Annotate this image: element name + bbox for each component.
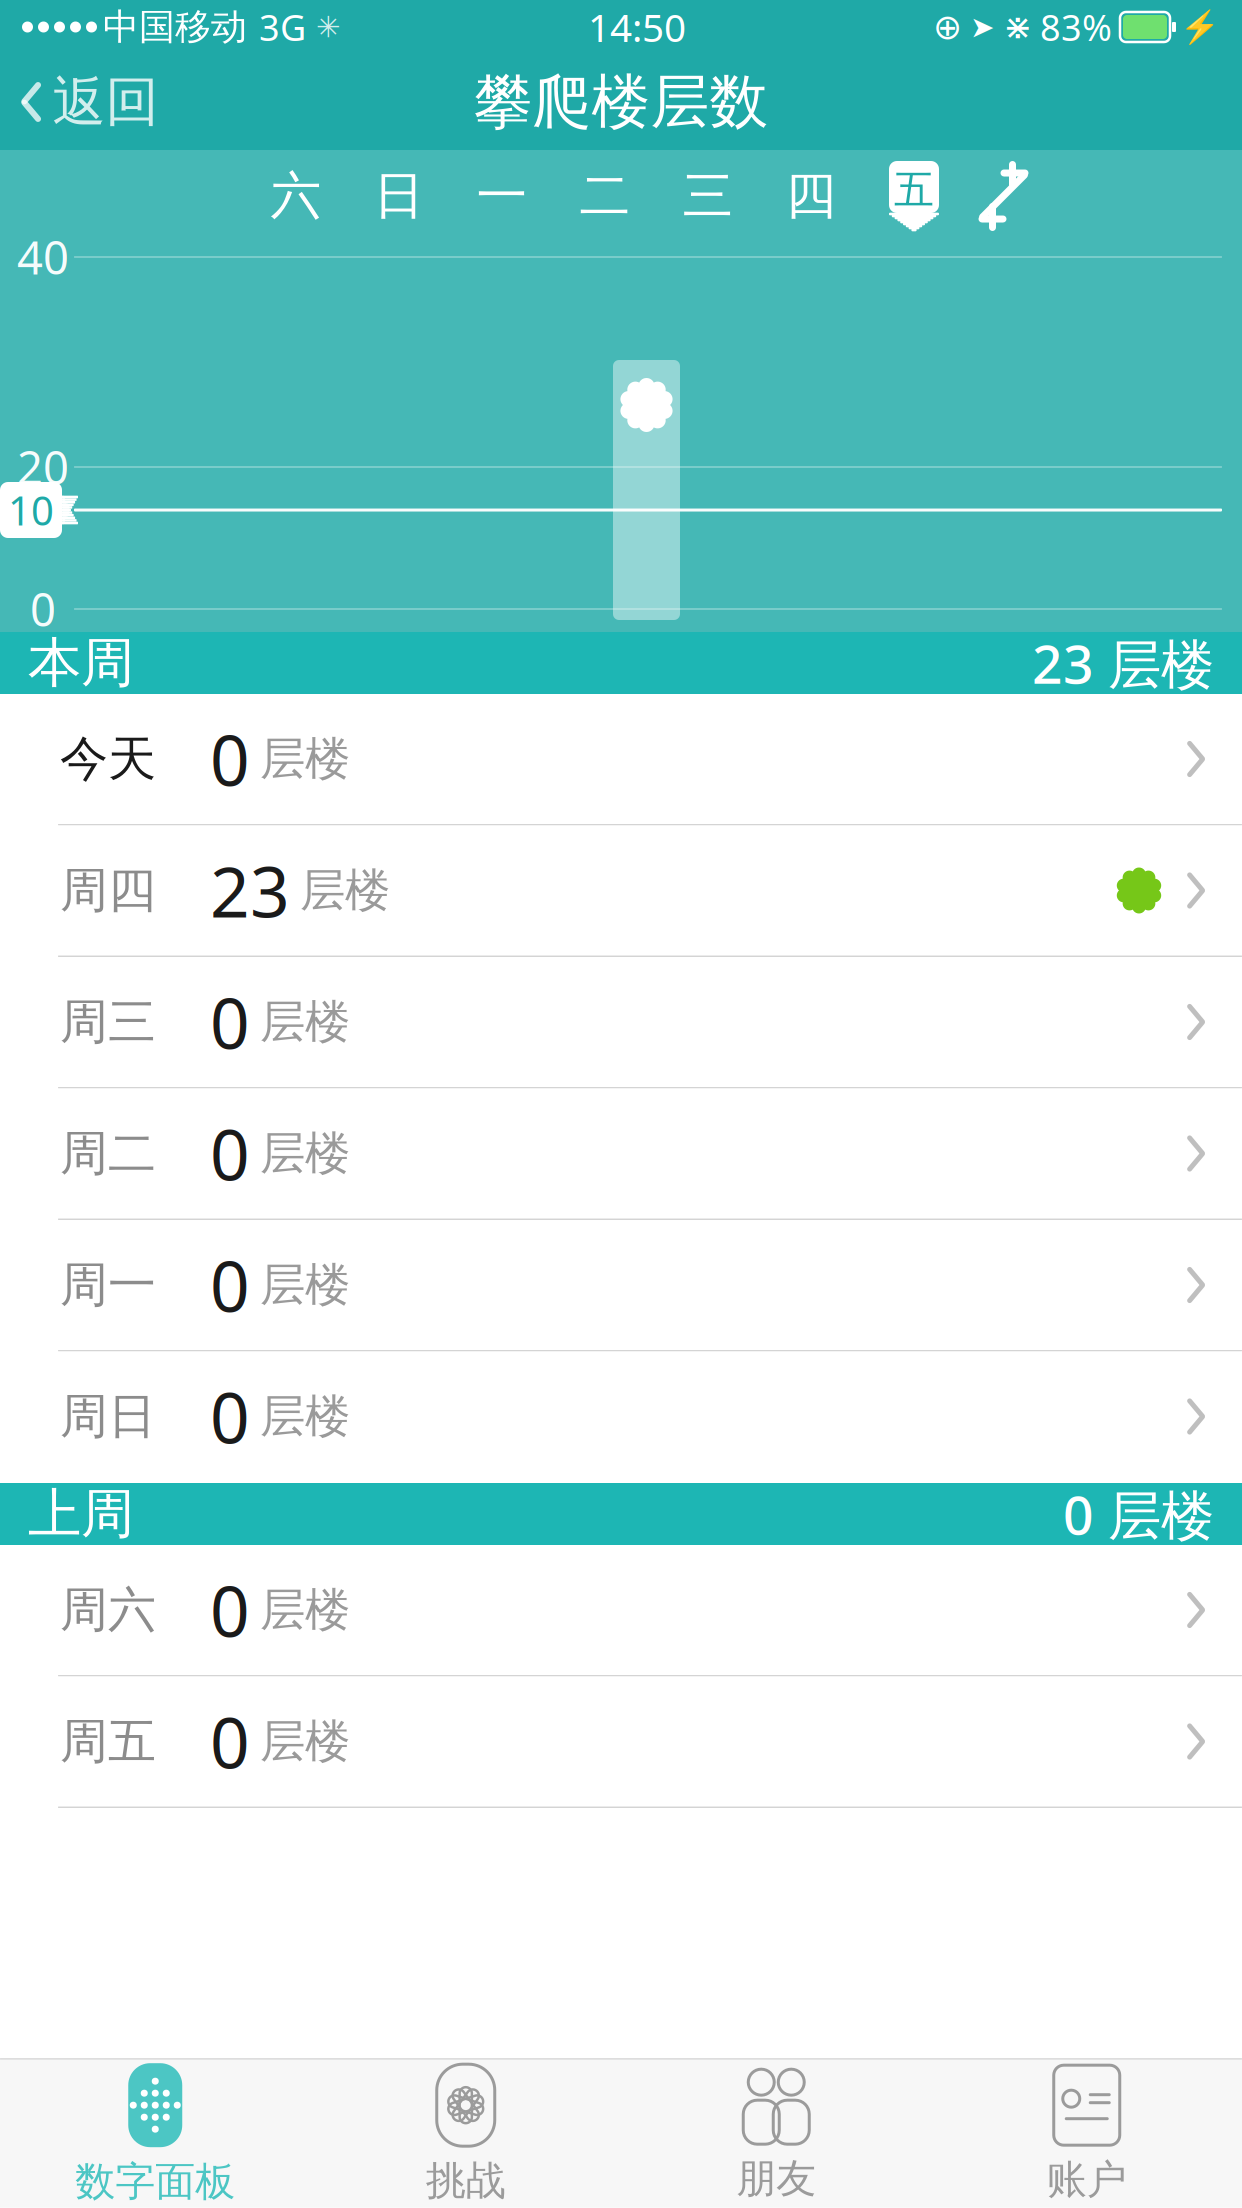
staticText: 中国移动 — [103, 5, 247, 49]
staticText: 二 — [579, 165, 630, 227]
staticText: 周四 — [60, 861, 156, 920]
staticText: 0 — [210, 1564, 250, 1656]
staticText: 层楼 — [260, 1714, 350, 1769]
staticText: 0 — [210, 713, 250, 805]
staticText: 20 — [17, 437, 69, 497]
staticText: 周六 — [60, 1580, 156, 1639]
staticText: 攀爬楼层数 — [473, 66, 768, 138]
button[interactable]: 周六 — [0, 1545, 1242, 1676]
staticText: 0 — [210, 976, 250, 1068]
staticText: ➤ — [970, 10, 995, 44]
staticText: 周二 — [60, 1124, 156, 1183]
staticText: 四 — [785, 165, 836, 227]
staticText: ✳ — [316, 10, 341, 44]
button[interactable]: 今天 — [0, 694, 1242, 825]
button[interactable]: 周二 — [0, 1088, 1242, 1220]
staticText: 挑战 — [426, 2156, 506, 2205]
staticText: ⊕ — [933, 7, 962, 47]
staticText: 层楼 — [260, 1582, 350, 1638]
staticText: 层楼 — [260, 1126, 350, 1181]
staticText: 0 — [210, 1239, 250, 1331]
button[interactable]: 返回 — [0, 59, 176, 145]
staticText: 六 — [270, 165, 321, 227]
staticText: 五 — [894, 165, 934, 214]
staticText: 0 — [30, 579, 56, 639]
staticText: 朋友 — [736, 2154, 816, 2203]
staticText: 本周 — [28, 630, 134, 696]
staticText: 23 — [210, 844, 290, 937]
staticText: 数字面板 — [75, 2157, 235, 2206]
button[interactable]: 挑战 — [310, 2052, 621, 2208]
staticText: 0 — [210, 1107, 250, 1200]
staticText: 今天 — [60, 729, 156, 788]
staticText: 日 — [373, 165, 424, 227]
button[interactable]: 周日 — [0, 1351, 1242, 1483]
staticText: 层楼 — [300, 863, 390, 918]
staticText: 周五 — [60, 1712, 156, 1771]
staticText: 0 — [210, 1695, 250, 1788]
staticText: 层楼 — [260, 731, 350, 787]
staticText: 返回 — [52, 69, 158, 135]
staticText: 14:50 — [588, 1, 686, 53]
staticText: ⋇ — [1003, 7, 1032, 47]
staticText: 三 — [682, 165, 733, 227]
staticText: 周日 — [60, 1387, 156, 1446]
staticText: 账户 — [1047, 2155, 1127, 2204]
button[interactable]: 朋友 — [621, 2054, 931, 2208]
staticText: 40 — [17, 227, 69, 287]
staticText: 0 — [210, 1370, 250, 1463]
staticText: 83% — [1040, 3, 1112, 51]
button[interactable]: 五 — [862, 158, 965, 234]
staticText: 上周 — [28, 1481, 134, 1547]
button[interactable]: 周四 — [0, 825, 1242, 957]
staticText: 10 — [8, 483, 54, 536]
button[interactable]: 周一 — [0, 1220, 1242, 1351]
staticText: 周一 — [60, 1255, 156, 1314]
staticText: 层楼 — [260, 1389, 350, 1444]
button[interactable]: 周五 — [0, 1676, 1242, 1808]
staticText: 0 层楼 — [1063, 1479, 1214, 1549]
button[interactable]: 全屏 — [965, 158, 1041, 234]
staticText: 层楼 — [260, 994, 350, 1050]
staticText: 3G — [259, 3, 306, 51]
staticText: 23 层楼 — [1032, 628, 1214, 698]
button[interactable]: 账户 — [931, 2053, 1242, 2208]
staticText: ⚡ — [1180, 9, 1220, 45]
button[interactable]: 周三 — [0, 957, 1242, 1088]
button[interactable]: 数字面板 — [0, 2051, 310, 2208]
staticText: 层楼 — [260, 1257, 350, 1313]
staticText: 周三 — [60, 992, 156, 1051]
staticText: 一 — [476, 165, 527, 227]
